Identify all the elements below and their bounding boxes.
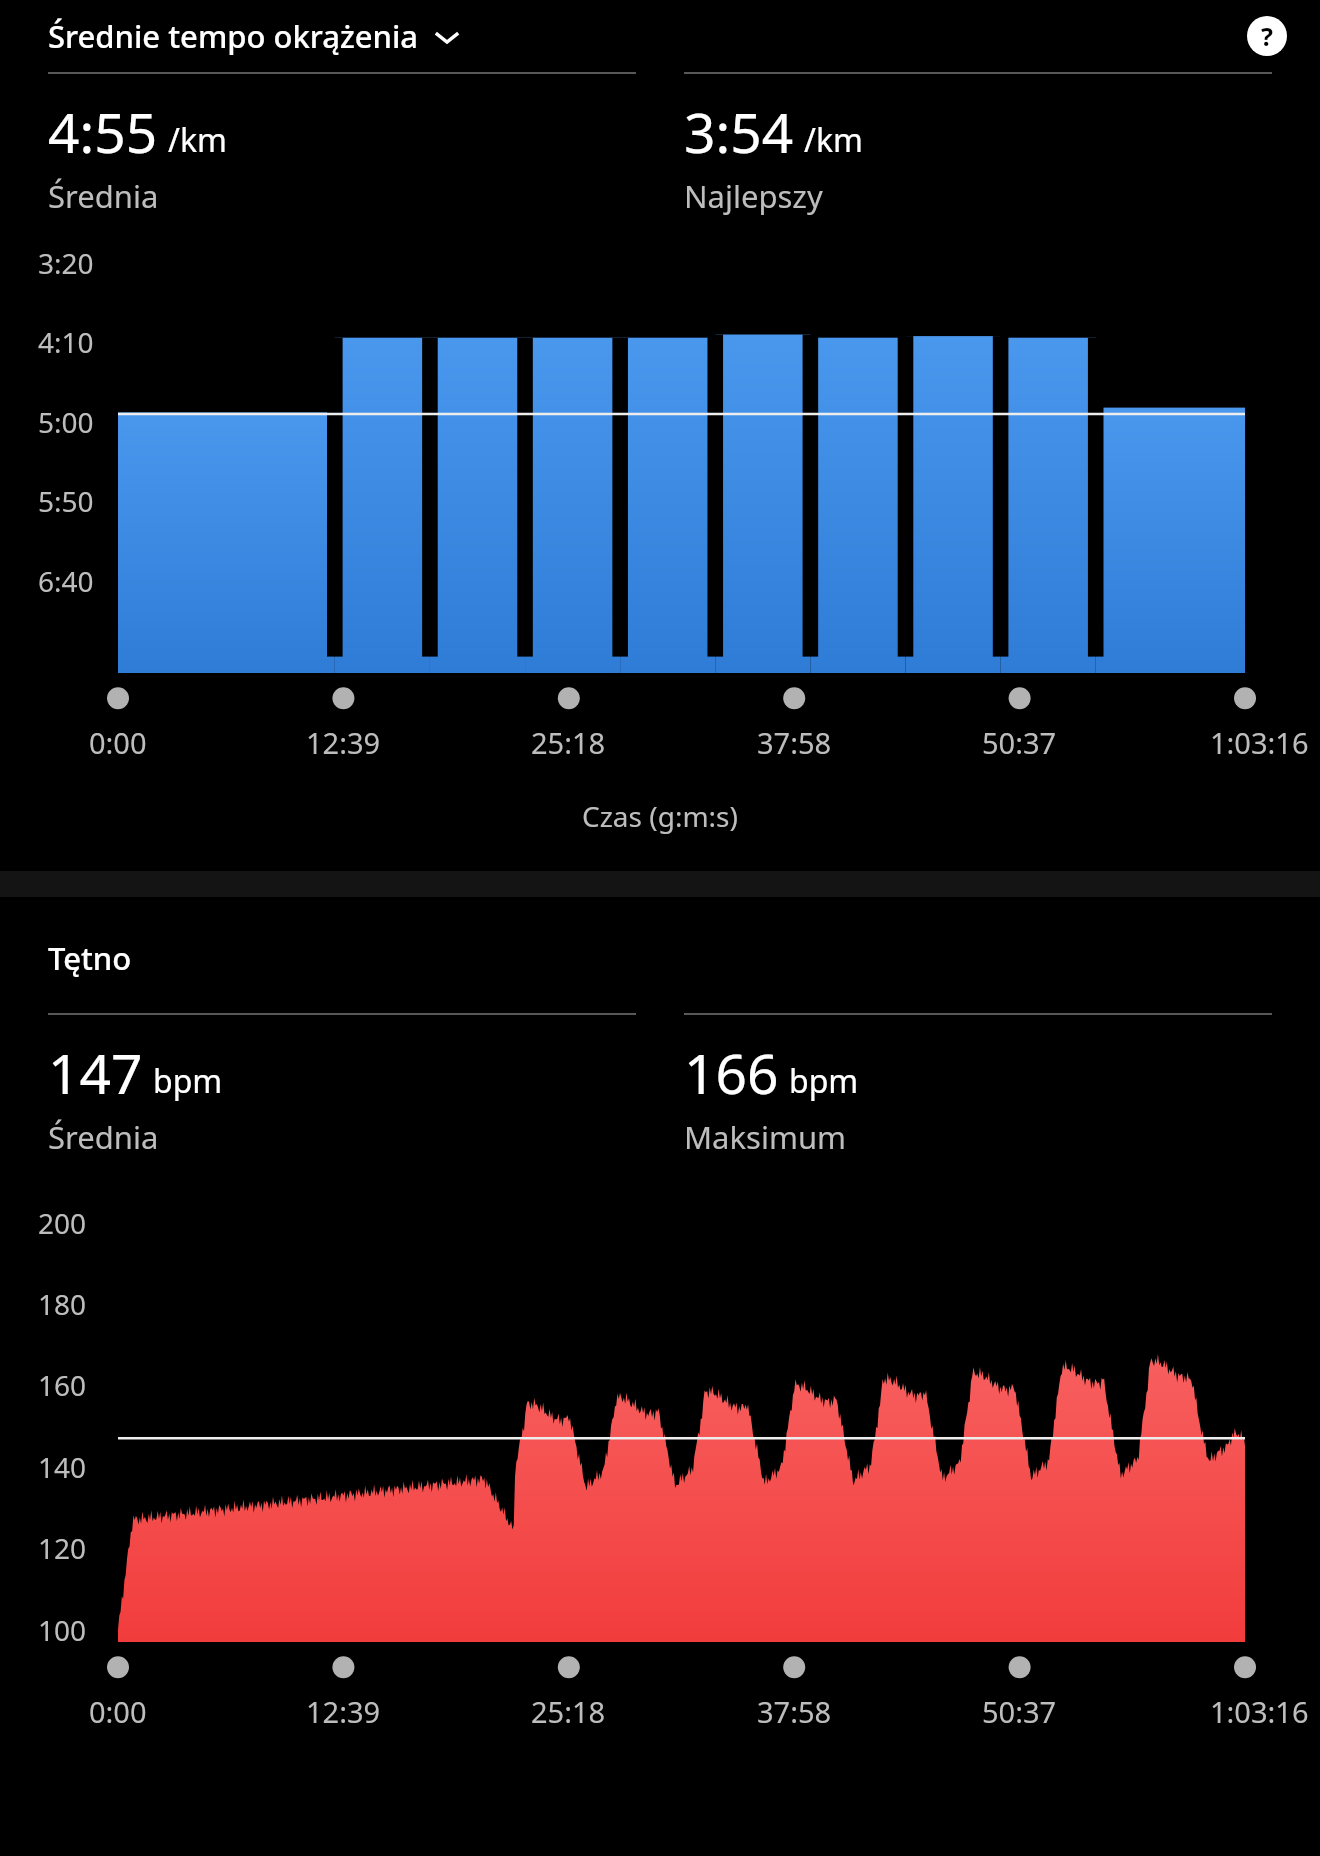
staticText: 1:03:16 [1210, 1692, 1309, 1731]
staticText: 147 [48, 1035, 143, 1110]
button[interactable]: 166 [684, 1013, 1272, 1158]
staticText: Średnia [48, 1116, 159, 1158]
staticText: 0:00 [89, 1692, 147, 1731]
staticText: 160 [38, 1366, 87, 1404]
staticText: 25:18 [531, 1692, 606, 1731]
button[interactable]: 3:54 [684, 72, 1272, 217]
staticText: Średnia [48, 175, 159, 217]
staticText: 166 [684, 1035, 779, 1110]
staticText: /km [168, 118, 227, 162]
staticText: 25:18 [531, 723, 606, 762]
button[interactable]: Tętno [48, 937, 132, 979]
staticText: 50:37 [982, 723, 1057, 762]
staticText: bpm [789, 1059, 859, 1103]
staticText: Maksimum [684, 1116, 847, 1158]
staticText: 200 [38, 1204, 87, 1242]
staticText: 5:50 [38, 482, 94, 520]
staticText: 100 [38, 1611, 87, 1649]
staticText: 0:00 [89, 723, 147, 762]
staticText: 6:40 [38, 562, 94, 600]
staticText: 4:10 [38, 323, 94, 361]
staticText: 12:39 [306, 1692, 381, 1731]
staticText: /km [804, 118, 863, 162]
staticText: Najlepszy [684, 175, 823, 217]
staticText: 1:03:16 [1210, 723, 1309, 762]
staticText: Średnie tempo okrążenia [48, 15, 419, 57]
staticText: 37:58 [757, 723, 832, 762]
staticText: 5:00 [38, 403, 94, 441]
staticText: 37:58 [757, 1692, 832, 1731]
button[interactable]: 4:55 [48, 72, 636, 217]
staticText: 4:55 [48, 94, 158, 169]
staticText: Czas (g:m:s) [582, 797, 738, 835]
staticText: 120 [38, 1529, 87, 1567]
staticText: 3:20 [38, 244, 94, 282]
staticText: 50:37 [982, 1692, 1057, 1731]
staticText: ? [1261, 19, 1273, 53]
button[interactable]: Średnie tempo okrążenia [48, 15, 1240, 57]
staticText: bpm [153, 1059, 223, 1103]
button[interactable]: Pomoc [1240, 9, 1294, 63]
staticText: 3:54 [684, 94, 794, 169]
staticText: 180 [38, 1285, 87, 1323]
staticText: 12:39 [306, 723, 381, 762]
staticText: 140 [38, 1448, 87, 1486]
button[interactable]: 147 [48, 1013, 636, 1158]
